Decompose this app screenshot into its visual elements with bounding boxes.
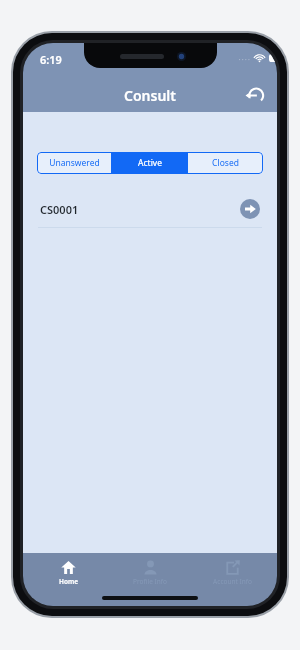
staticText: Unanswered — [49, 157, 100, 169]
staticText: Profile Info — [133, 577, 167, 586]
staticText: Closed — [212, 157, 239, 169]
button[interactable]: Profile Info — [113, 559, 187, 586]
button[interactable]: Home — [31, 559, 105, 586]
staticText: Home — [59, 577, 78, 586]
other: Open consult — [240, 199, 260, 219]
staticText: Account Info — [213, 577, 252, 586]
staticText: Active — [138, 157, 162, 169]
button[interactable]: Account Info — [195, 559, 269, 586]
staticText: Consult — [124, 86, 176, 105]
button[interactable]: Closed — [188, 152, 263, 174]
staticText: CS0001 — [40, 202, 79, 217]
button[interactable]: Unanswered — [37, 152, 111, 174]
staticText: 6:19 — [40, 52, 62, 67]
button[interactable]: CS0001 — [23, 191, 277, 228]
button[interactable]: Active — [112, 152, 187, 174]
button[interactable]: Log out — [240, 81, 268, 109]
